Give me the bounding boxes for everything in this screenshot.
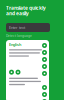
button[interactable]: Options: [42, 99, 47, 100]
button[interactable]: Listen: [9, 70, 14, 75]
button[interactable]: Send: [42, 92, 47, 97]
button[interactable]: Listen: [42, 64, 47, 69]
button[interactable]: Copy translation: [15, 70, 20, 75]
button[interactable]: More: [42, 71, 47, 76]
staticText: Enter text: [9, 25, 25, 30]
staticText: Translate quickly: [6, 5, 46, 10]
staticText: English: [9, 42, 21, 47]
button[interactable]: Save: [42, 85, 47, 90]
staticText: Detect language: [6, 34, 32, 38]
staticText: and easily: [6, 10, 29, 16]
button[interactable]: Share: [42, 50, 47, 55]
button[interactable]: Copy: [42, 57, 47, 62]
button[interactable]: Favourite: [42, 43, 47, 48]
